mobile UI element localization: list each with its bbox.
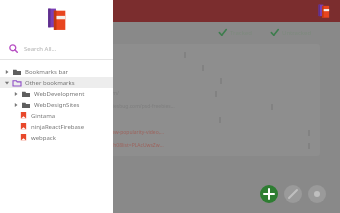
button[interactable]: Other bookmarks — [0, 77, 113, 88]
button[interactable]: ninjaReactFirebase — [0, 121, 113, 132]
staticText: Search All... — [24, 45, 57, 53]
staticText: ninjaReactFirebase — [31, 123, 85, 131]
staticText: Gintama — [31, 112, 56, 120]
staticText: Bookmarks bar — [25, 68, 68, 76]
button[interactable]: Row menu — [211, 89, 221, 99]
button[interactable]: www.youtube.com/watch?v=c4dbZXt-jh08list… — [18, 139, 320, 152]
button[interactable]: webpack — [0, 132, 113, 143]
button[interactable]: Tracked — [216, 27, 254, 38]
button[interactable]: Row menu — [180, 50, 190, 60]
button[interactable]: Row menu — [215, 115, 225, 125]
button[interactable]: Edit — [284, 185, 302, 203]
staticText: WebDesignSites — [34, 101, 80, 109]
button[interactable]: ures | Unsplash — [18, 87, 320, 100]
button[interactable]: Row menu — [198, 63, 208, 73]
button[interactable]: Untracked — [268, 27, 314, 38]
button[interactable]: Bookmarks bar — [0, 66, 113, 77]
staticText: ures | Unsplash — [24, 90, 64, 97]
button[interactable]: ibrum] — [18, 48, 320, 61]
staticText: https://freebiesbug.com/psd-freebies/web… — [83, 103, 175, 110]
button[interactable]: WebDevelopment — [0, 88, 113, 99]
staticText: mplates – Freebiesbug — [24, 103, 80, 110]
staticText: www.youtube.com/watch?v=c4dbZXt-jh08list… — [24, 142, 164, 149]
staticText: WebDevelopment — [34, 90, 85, 98]
staticText: https://unsplash.com/ — [67, 90, 119, 97]
button[interactable]: mplates – Freebiesbug — [18, 100, 320, 113]
button[interactable]: Row menu — [304, 141, 314, 151]
button[interactable]: https://dribbble.com/ — [18, 113, 320, 126]
staticText: https://dev.to/ — [24, 64, 58, 71]
button[interactable]: Search All... — [0, 38, 113, 59]
button[interactable]: Add bookmark — [260, 185, 278, 203]
button[interactable]: Row menu — [216, 76, 226, 86]
staticText: https://dribbble.com/ — [24, 116, 75, 123]
button[interactable]: WebDesignSites — [0, 99, 113, 110]
staticText: github.com/gnmarta/episode-192-screw-pop… — [24, 129, 164, 136]
button[interactable]: Gintama — [0, 110, 113, 121]
button[interactable]: Row menu — [304, 128, 314, 138]
button[interactable]: More — [308, 185, 326, 203]
staticText: tps://5hfmservet.io/u/ — [24, 77, 76, 84]
button[interactable]: Row menu — [267, 102, 277, 112]
button[interactable]: tps://5hfmservet.io/u/ — [18, 74, 320, 87]
button[interactable]: github.com/gnmarta/episode-192-screw-pop… — [18, 126, 320, 139]
staticText: Other bookmarks — [25, 79, 75, 87]
staticText: webpack — [31, 134, 56, 142]
button[interactable]: https://dev.to/ — [18, 61, 320, 74]
button[interactable]: Books — [316, 3, 332, 19]
